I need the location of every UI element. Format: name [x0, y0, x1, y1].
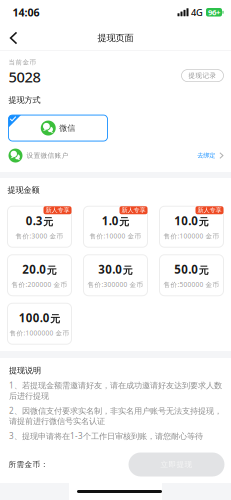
staticText: 设置微信账户: [26, 151, 68, 160]
button[interactable]: 立即提现: [128, 452, 224, 476]
staticText: 提现说明: [9, 365, 41, 376]
staticText: 5028: [8, 67, 40, 87]
staticText: 提现页面: [97, 32, 133, 44]
staticText: 元: [199, 264, 209, 277]
staticText: 立即提现: [160, 460, 192, 469]
staticText: 96+: [208, 7, 220, 17]
staticText: 所需金币：: [8, 460, 48, 469]
staticText: 售价:500000 金币: [163, 280, 219, 289]
staticText: 元: [50, 313, 60, 325]
staticText: 去绑定: [197, 152, 215, 159]
staticText: 2、因微信支付要求实名制，非实名用户账号无法支持提现，请提前进行微信号实名认证: [9, 405, 222, 426]
button[interactable]: 10.0: [159, 206, 223, 247]
button[interactable]: 30.0: [83, 255, 147, 296]
staticText: 0.3: [26, 213, 43, 229]
button[interactable]: 提现记录: [181, 51, 223, 82]
staticText: 元: [47, 264, 57, 277]
staticText: 售价:300000 金币: [87, 280, 143, 289]
staticText: 1.0: [102, 213, 119, 229]
staticText: 50.0: [174, 261, 198, 277]
staticText: 3、提现申请将在1-3个工作日审核到账，请您耐心等待: [9, 430, 203, 441]
button[interactable]: 50.0: [159, 255, 223, 296]
staticText: 14:06: [12, 5, 39, 19]
staticText: 4、每日可申请提现1次，若当日已申请请次日再来: [9, 445, 187, 456]
staticText: 售价:100000 金币: [163, 232, 219, 240]
staticText: 提现方式: [8, 95, 40, 105]
staticText: 元: [43, 216, 53, 228]
staticText: 1、若提现金额需邀请好友，请在成功邀请好友达到要求人数后进行提现: [9, 380, 222, 401]
staticText: 元: [199, 216, 209, 228]
button[interactable]: 100.0: [7, 303, 71, 344]
staticText: 100.0: [19, 310, 50, 326]
staticText: 售价:3000 金币: [15, 232, 63, 240]
button[interactable]: 0.3: [7, 206, 71, 247]
staticText: 30.0: [98, 261, 122, 277]
staticText: 当前金币: [8, 58, 36, 66]
staticText: 新人专享: [121, 206, 145, 214]
button[interactable]: 微信: [8, 105, 107, 141]
button[interactable]: 设置微信账户: [8, 141, 223, 163]
button[interactable]: 返回: [0, 24, 26, 51]
staticText: 元: [123, 264, 133, 277]
staticText: 20.0: [22, 261, 46, 277]
staticText: 元: [119, 216, 129, 228]
staticText: 售价:200000 金币: [11, 280, 67, 289]
staticText: 微信: [59, 123, 75, 133]
staticText: 售价:10000 金币: [89, 232, 141, 240]
button[interactable]: 1.0: [83, 206, 147, 247]
button[interactable]: 20.0: [7, 255, 71, 296]
staticText: 新人专享: [45, 206, 69, 214]
staticText: 售价:1000000 金币: [9, 329, 69, 337]
staticText: 10.0: [174, 213, 198, 229]
staticText: 提现记录: [188, 71, 216, 80]
staticText: 4G: [191, 6, 203, 19]
staticText: 提现金额: [7, 185, 39, 195]
staticText: 新人专享: [197, 206, 221, 214]
